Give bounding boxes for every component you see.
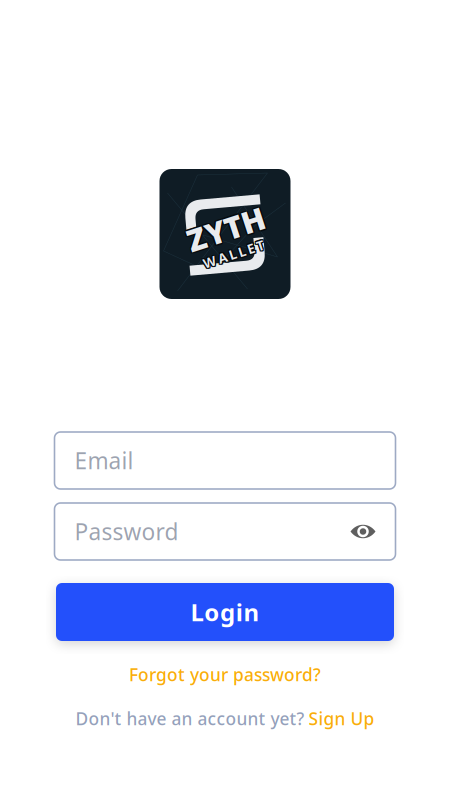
staticText: A xyxy=(210,246,219,264)
staticText: L xyxy=(190,596,203,628)
button[interactable]: Sign Up xyxy=(308,707,374,730)
staticText: L xyxy=(224,245,231,263)
staticText: ZYTH xyxy=(189,207,269,248)
staticText: T xyxy=(251,245,259,263)
staticText: n xyxy=(244,596,260,628)
staticText: T xyxy=(252,246,260,264)
staticText: ZYTH xyxy=(189,208,269,249)
staticText: Email xyxy=(74,445,133,475)
staticText: g xyxy=(220,596,235,628)
staticText: L xyxy=(234,245,241,263)
staticText: A xyxy=(213,247,222,265)
staticText: L xyxy=(223,247,230,265)
staticText: ZYTH xyxy=(189,209,269,250)
staticText: L xyxy=(223,245,230,263)
staticText: L xyxy=(232,247,239,265)
staticText: A xyxy=(210,247,219,265)
staticText: A xyxy=(212,247,221,265)
staticText: W xyxy=(197,245,210,263)
staticText: o xyxy=(204,596,219,628)
staticText: T xyxy=(251,246,259,264)
staticText: L xyxy=(233,247,240,265)
staticText: Forgot your password? xyxy=(129,663,321,686)
staticText: T xyxy=(251,247,259,265)
staticText: W xyxy=(197,246,210,264)
staticText: T xyxy=(253,246,261,264)
staticText: L xyxy=(232,246,239,264)
staticText: T xyxy=(252,245,260,263)
staticText: W xyxy=(195,247,208,265)
staticText: E xyxy=(242,247,249,265)
staticText: ZYTH xyxy=(187,207,267,248)
staticText: L xyxy=(222,247,229,265)
staticText: Password xyxy=(74,516,178,546)
staticText: ZYTH xyxy=(188,207,268,248)
staticText: E xyxy=(243,246,250,264)
staticText: ZYTH xyxy=(188,209,268,250)
staticText: ZYTH xyxy=(187,209,267,250)
staticText: Don't have an account yet? xyxy=(75,707,304,730)
staticText: ZYTH xyxy=(188,208,268,249)
staticText: W xyxy=(196,247,209,265)
staticText: T xyxy=(252,247,260,265)
staticText: A xyxy=(213,246,222,264)
staticText: L xyxy=(234,247,241,265)
staticText: T xyxy=(253,247,261,265)
staticText: L xyxy=(224,247,231,265)
staticText: W xyxy=(196,246,209,264)
staticText: Sign Up xyxy=(308,707,374,730)
staticText: A xyxy=(212,246,221,264)
staticText: L xyxy=(232,245,239,263)
button[interactable]: L xyxy=(56,583,394,641)
staticText: i xyxy=(236,596,243,628)
staticText: W xyxy=(195,245,208,263)
staticText: E xyxy=(242,245,249,263)
staticText: L xyxy=(233,246,240,264)
staticText: T xyxy=(253,245,261,263)
staticText: W xyxy=(197,247,210,265)
staticText: A xyxy=(212,245,221,263)
staticText: L xyxy=(233,245,240,263)
staticText: A xyxy=(213,245,222,263)
staticText: ZYTH xyxy=(187,208,267,249)
staticText: W xyxy=(196,245,209,263)
staticText: E xyxy=(241,247,248,265)
staticText: L xyxy=(223,246,230,264)
staticText: E xyxy=(241,245,248,263)
staticText: L xyxy=(222,246,229,264)
staticText: W xyxy=(195,246,208,264)
button[interactable]: Forgot your password? xyxy=(129,663,321,686)
staticText: E xyxy=(241,246,248,264)
button[interactable]: Show password xyxy=(350,523,375,540)
staticText: A xyxy=(210,245,219,263)
staticText: E xyxy=(243,247,250,265)
staticText: L xyxy=(222,245,229,263)
staticText: L xyxy=(224,246,231,264)
staticText: E xyxy=(242,246,249,264)
staticText: L xyxy=(234,246,241,264)
staticText: E xyxy=(243,245,250,263)
